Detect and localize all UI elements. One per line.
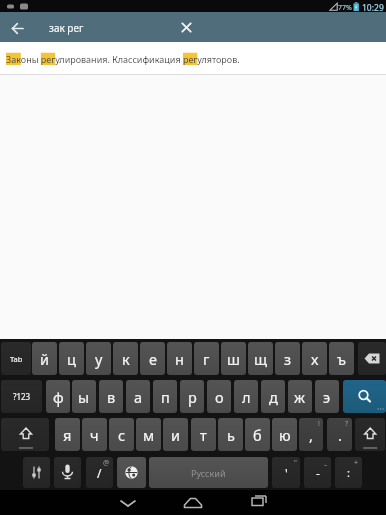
staticText: _ (324, 458, 328, 468)
staticText: ю (279, 425, 291, 445)
button[interactable]: с (109, 418, 134, 451)
staticText: ы (78, 387, 90, 407)
button[interactable]: Русский (149, 457, 268, 488)
button[interactable] (358, 342, 386, 375)
staticText: ш (227, 349, 240, 369)
staticText: ь (227, 425, 235, 445)
button[interactable] (1, 418, 49, 451)
button[interactable]: ж (288, 380, 312, 413)
staticText: 10:29 (362, 2, 384, 14)
staticText: : (347, 465, 350, 480)
button[interactable]: й (32, 342, 57, 375)
button[interactable] (355, 418, 385, 451)
button[interactable]: э (315, 380, 339, 413)
staticText: . (338, 425, 342, 445)
staticText: у (95, 349, 103, 369)
button[interactable]: ш (221, 342, 246, 375)
staticText: й (40, 349, 50, 369)
staticText: о (215, 387, 224, 407)
staticText: р (188, 387, 197, 407)
button[interactable]: ?123 (1, 380, 42, 413)
button[interactable]: Законы регулирования. Классификация регу… (0, 42, 386, 75)
button[interactable]: ъ (329, 342, 354, 375)
staticText: ?123 (13, 391, 31, 402)
staticText: " (294, 458, 297, 468)
staticText: ? (345, 419, 349, 429)
button[interactable]: и (163, 418, 188, 451)
staticText: с (118, 425, 126, 445)
staticText: м (143, 425, 155, 445)
button[interactable]: е (140, 342, 165, 375)
button[interactable] (4, 12, 32, 42)
button[interactable] (343, 380, 386, 413)
staticText: в (107, 387, 116, 407)
staticText: Русский (191, 467, 226, 479)
button[interactable]: р (180, 380, 204, 413)
button[interactable]: г (194, 342, 219, 375)
staticText: / (97, 465, 102, 481)
button[interactable]: ы (72, 380, 96, 413)
button[interactable] (238, 490, 278, 515)
staticText: н (175, 349, 184, 369)
button[interactable]: в (99, 380, 123, 413)
button[interactable] (108, 490, 148, 515)
button[interactable]: ф (46, 380, 70, 413)
staticText: п (161, 387, 170, 407)
staticText: ц (67, 349, 76, 369)
button[interactable]: з (275, 342, 300, 375)
staticText: Tab (10, 354, 23, 364)
button[interactable]: я (55, 418, 80, 451)
staticText: щ (254, 349, 268, 369)
staticText: и (171, 425, 181, 445)
button[interactable]: д (261, 380, 285, 413)
button[interactable]: х (302, 342, 327, 375)
staticText: ф (53, 387, 64, 407)
staticText: л (242, 387, 251, 407)
staticText: - (316, 465, 320, 481)
button[interactable]: п (153, 380, 177, 413)
button[interactable] (117, 457, 146, 488)
staticText: ъ (337, 349, 347, 369)
staticText: ж (294, 387, 306, 407)
button[interactable]: у (86, 342, 111, 375)
button[interactable]: т (191, 418, 216, 451)
staticText: з (284, 349, 292, 369)
button[interactable]: ч (82, 418, 107, 451)
staticText: д (269, 387, 278, 407)
staticText: , (309, 425, 313, 445)
button[interactable]: а (126, 380, 150, 413)
button[interactable] (172, 12, 202, 42)
button[interactable] (54, 457, 81, 488)
button[interactable]: Tab (1, 342, 31, 375)
button[interactable]: ю (272, 418, 297, 451)
button[interactable] (23, 457, 50, 488)
button[interactable]: / (86, 457, 113, 488)
staticText: @ (103, 458, 110, 468)
button[interactable]: ' (272, 457, 300, 488)
button[interactable]: л (234, 380, 258, 413)
staticText: т (200, 425, 207, 445)
staticText: г (203, 349, 210, 369)
staticText: я (63, 425, 72, 445)
staticText: + (354, 458, 359, 468)
staticText: а (134, 387, 143, 407)
button[interactable]: - (304, 457, 331, 488)
button[interactable]: ц (59, 342, 84, 375)
button[interactable]: к (113, 342, 138, 375)
button[interactable] (173, 490, 213, 515)
button[interactable]: . (327, 418, 352, 451)
staticText: к (122, 349, 130, 369)
button[interactable]: , (299, 418, 323, 451)
button[interactable]: щ (248, 342, 273, 375)
button[interactable]: ь (218, 418, 243, 451)
button[interactable]: м (136, 418, 161, 451)
staticText: 77% (338, 3, 352, 13)
button[interactable]: н (167, 342, 192, 375)
button[interactable]: б (245, 418, 270, 451)
staticText: х (311, 349, 319, 369)
staticText: б (253, 425, 262, 445)
staticText: ! (318, 419, 320, 429)
staticText: ' (285, 465, 288, 481)
button[interactable]: : (335, 457, 362, 488)
button[interactable]: о (207, 380, 231, 413)
